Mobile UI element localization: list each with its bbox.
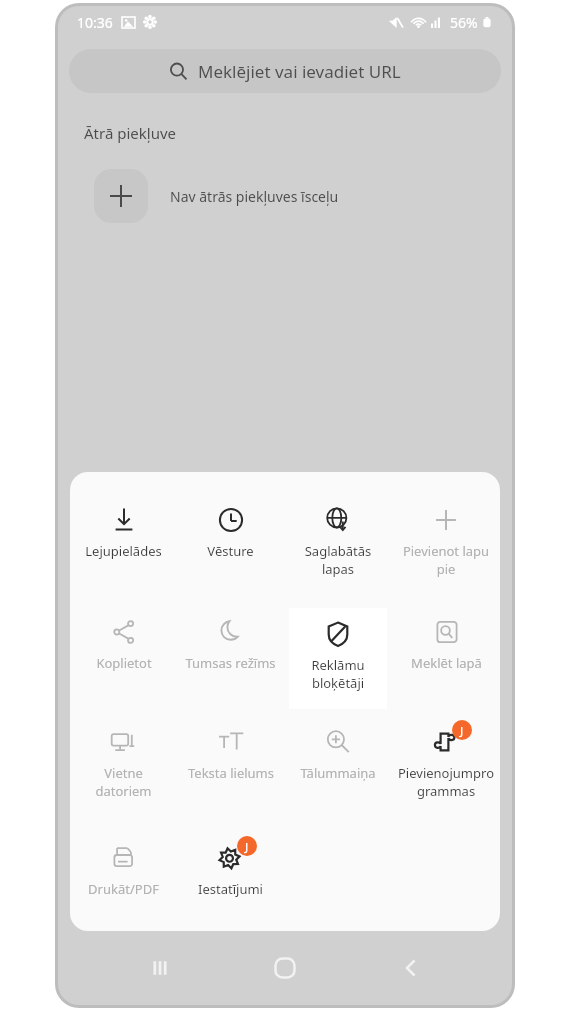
staticText: Teksta lielums <box>188 764 274 782</box>
button[interactable]: Reklāmu bloķētāji <box>289 608 387 709</box>
button[interactable]: Vēsture <box>182 496 279 560</box>
button[interactable]: Vietne datoriem <box>75 718 172 800</box>
button[interactable]: Back <box>387 944 435 992</box>
staticText: Koplietot <box>96 654 152 672</box>
staticText: Meklēt lapā <box>411 654 482 672</box>
staticText: Meklējiet vai ievadiet URL <box>198 60 401 83</box>
staticText: Drukāt/PDF <box>88 880 159 898</box>
staticText: J <box>245 839 249 854</box>
button[interactable]: Meklējiet vai ievadiet URL <box>69 49 501 93</box>
staticText: 56% <box>450 13 478 32</box>
staticText: Pievienot lapu pie <box>397 542 495 578</box>
staticText: 10:36 <box>77 13 113 32</box>
staticText: Iestatījumi <box>198 880 263 898</box>
button[interactable]: Tālummaiņa <box>289 718 387 782</box>
button[interactable]: Home <box>261 944 309 992</box>
staticText: Saglabātās lapas <box>289 542 387 578</box>
staticText: J <box>460 723 464 738</box>
button[interactable]: J <box>397 718 495 800</box>
staticText: Vietne datoriem <box>75 764 172 800</box>
button[interactable]: Drukāt/PDF <box>75 834 172 898</box>
button[interactable]: Lejupielādes <box>75 496 172 560</box>
button[interactable]: Pievienot lapu pie <box>397 496 495 578</box>
button[interactable]: Recent apps <box>136 944 184 992</box>
staticText: Vēsture <box>207 542 254 560</box>
staticText: Tumsas režīms <box>185 654 276 672</box>
button[interactable]: Saglabātās lapas <box>289 496 387 578</box>
staticText: Ātrā piekļuve <box>84 123 176 143</box>
button[interactable]: J <box>182 834 279 898</box>
staticText: Nav ātrās piekļuves īsceļu <box>170 187 339 206</box>
staticText: Tālummaiņa <box>300 764 376 782</box>
button[interactable]: Tumsas režīms <box>182 608 279 672</box>
staticText: Pievienojumprogrammas <box>397 764 495 800</box>
button[interactable]: Meklēt lapā <box>397 608 495 672</box>
staticText: Reklāmu bloķētāji <box>289 656 387 692</box>
button[interactable]: Koplietot <box>75 608 172 672</box>
staticText: Lejupielādes <box>85 542 162 560</box>
button[interactable]: Teksta lielums <box>182 718 279 782</box>
button[interactable]: Nav ātrās piekļuves īsceļu <box>94 169 339 223</box>
